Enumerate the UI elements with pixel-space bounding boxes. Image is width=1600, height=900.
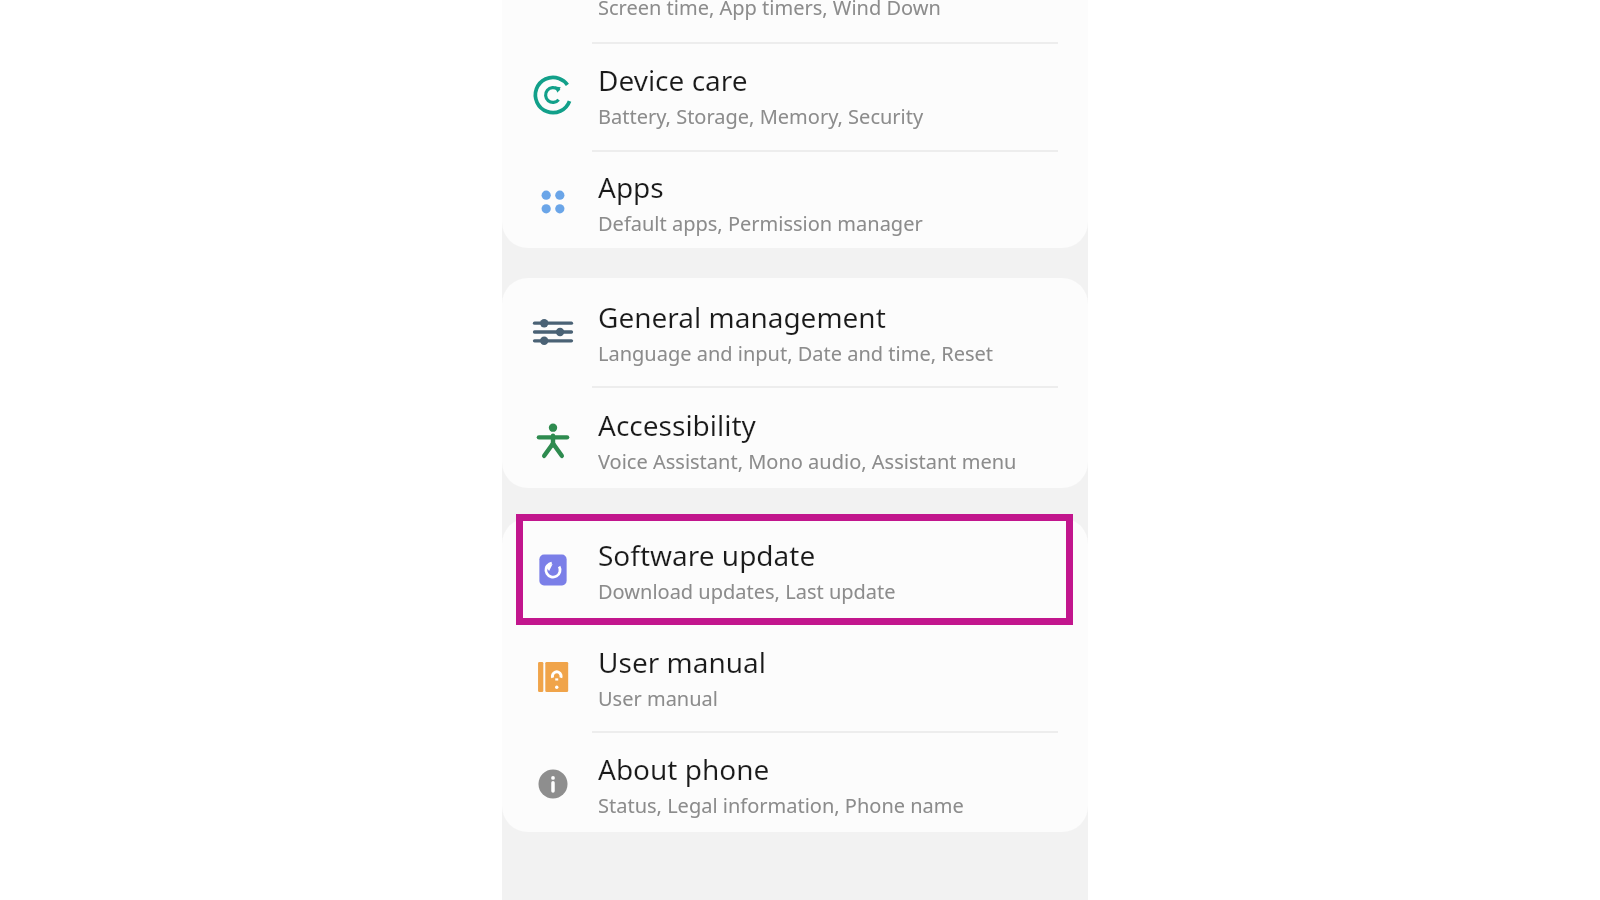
staticText: General management [598,298,886,336]
button[interactable]: General management [502,279,1088,385]
staticText: Default apps, Permission manager [598,210,923,237]
staticText: Status, Legal information, Phone name [598,792,964,819]
button[interactable]: Device care [502,42,1088,148]
staticText: Device care [598,61,748,99]
staticText: Accessibility [598,406,756,444]
staticText: Screen time, App timers, Wind Down [598,0,941,21]
staticText: Battery, Storage, Memory, Security [598,103,924,130]
button[interactable]: Software update [502,517,1088,623]
button[interactable]: Apps [502,149,1088,255]
staticText: Download updates, Last update [598,578,896,605]
button[interactable]: User manual [502,624,1088,730]
button[interactable]: About phone [502,731,1088,837]
button[interactable]: Accessibility [502,387,1088,493]
staticText: Voice Assistant, Mono audio, Assistant m… [598,448,1017,475]
staticText: Language and input, Date and time, Reset [598,340,994,367]
staticText: Apps [598,168,664,206]
staticText: About phone [598,750,770,788]
staticText: User manual [598,643,766,681]
staticText: User manual [598,685,718,712]
staticText: Software update [598,536,816,574]
other: Software update [531,548,575,592]
